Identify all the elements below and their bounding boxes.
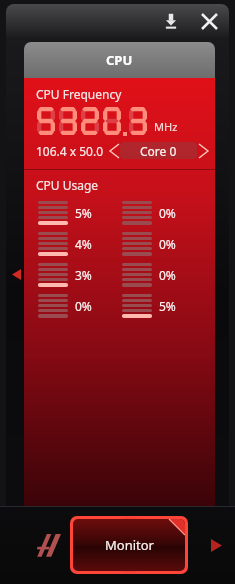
button[interactable]: CPU [24,42,215,78]
staticText: CPU [106,51,133,69]
staticText: 3% [75,267,92,283]
button[interactable]: Core 0 [120,142,197,159]
staticText: CPU Frequency [36,86,122,102]
button[interactable]: Collapse panel [8,266,24,282]
staticText: Core 0 [140,143,177,159]
button[interactable]: Close [197,9,221,33]
staticText: 5% [75,205,92,221]
staticText: 0% [159,205,176,221]
staticText: MHz [154,119,178,134]
button[interactable]: Minimize [159,9,183,33]
staticText: 0% [159,236,176,252]
button[interactable]: Next core [197,143,209,159]
staticText: 0% [75,298,92,314]
staticText: Monitor [105,536,154,554]
button[interactable]: Monitor [73,519,185,571]
staticText: 0% [159,267,176,283]
staticText: CPU Usage [36,177,99,193]
staticText: 5% [159,298,176,314]
button[interactable]: Previous [70,536,88,554]
staticText: 4% [75,236,92,252]
button[interactable]: Next [207,536,225,554]
button[interactable]: Previous core [108,143,120,159]
staticText: 106.4 x 50.0 [36,143,104,159]
